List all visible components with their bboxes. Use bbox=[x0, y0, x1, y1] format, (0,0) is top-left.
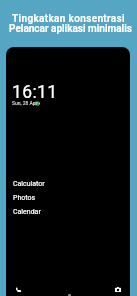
staticText: Calendar bbox=[13, 208, 41, 216]
staticText: Sun, 28 Apr bbox=[12, 100, 38, 106]
button[interactable]: Camera bbox=[111, 282, 125, 296]
button[interactable]: Phone bbox=[11, 282, 25, 296]
staticText: Photos bbox=[13, 194, 36, 202]
button[interactable]: Calculator bbox=[6, 177, 130, 191]
staticText: 16:11 bbox=[12, 82, 58, 103]
staticText: Pelancar aplikasi minimalis bbox=[9, 23, 132, 35]
button[interactable]: Calendar bbox=[6, 205, 130, 219]
staticText: Tingkatkan konsentrasi bbox=[12, 13, 125, 25]
staticText: Calculator bbox=[13, 180, 45, 188]
button[interactable]: Photos bbox=[6, 191, 130, 205]
